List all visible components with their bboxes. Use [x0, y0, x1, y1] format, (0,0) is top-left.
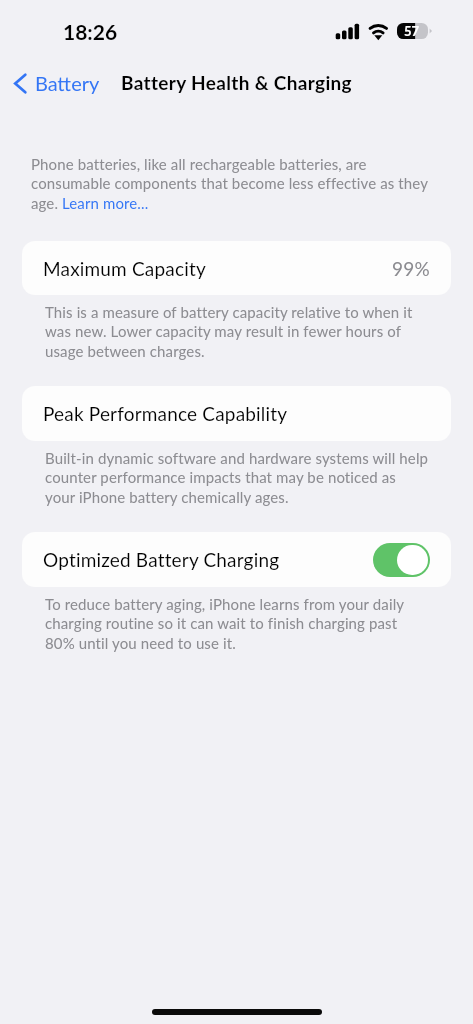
staticText: Built-in dynamic software and hardware s… [45, 449, 473, 506]
button[interactable]: Maximum Capacity [22, 241, 451, 295]
button[interactable]: Optimized Battery Charging, on [373, 543, 430, 577]
staticText: This is a measure of battery capacity re… [45, 303, 473, 360]
staticText: Maximum Capacity [43, 257, 206, 280]
staticText: Peak Performance Capability [43, 402, 288, 425]
button[interactable]: Peak Performance Capability [22, 386, 451, 441]
staticText: Battery [35, 71, 100, 95]
staticText: 57 [404, 23, 420, 39]
button[interactable]: Learn more about battery health [62, 192, 146, 212]
button[interactable]: Battery [0, 68, 110, 98]
staticText: 99% [392, 257, 430, 280]
staticText: Optimized Battery Charging [43, 548, 280, 571]
staticText: 18:26 [63, 19, 118, 44]
staticText: To reduce battery aging, iPhone learns f… [45, 595, 473, 652]
staticText: Battery Health & Charging [0, 71, 473, 94]
staticText: Phone batteries, like all rechargeable b… [31, 155, 473, 212]
